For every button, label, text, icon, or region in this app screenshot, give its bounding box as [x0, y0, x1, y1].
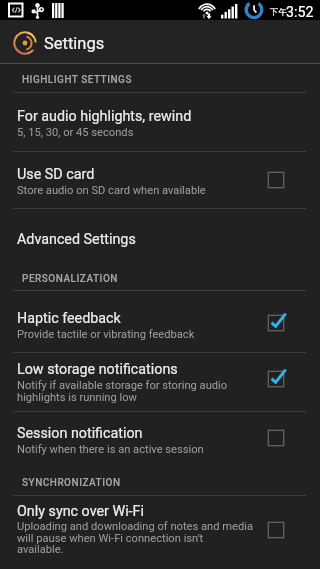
- staticText: Haptic feedback: [17, 310, 121, 327]
- staticText: Low storage notifications: [17, 361, 178, 378]
- staticText: 5, 15, 30, or 45 seconds: [17, 126, 287, 139]
- staticText: Notify if available storage for storing …: [17, 379, 287, 404]
- staticText: 3:52: [286, 4, 314, 21]
- button[interactable]: Unchecked: [263, 517, 289, 543]
- staticText: Notify when there is an active session: [17, 443, 287, 456]
- staticText: Use SD card: [17, 166, 95, 183]
- staticText: PERSONALIZATION: [22, 273, 118, 285]
- staticText: Session notification: [17, 425, 143, 442]
- staticText: SYNCHRONIZATION: [22, 477, 121, 489]
- staticText: Only sync over Wi-Fi: [17, 503, 144, 520]
- button[interactable]: Settings: [0, 20, 320, 63]
- button[interactable]: Unchecked: [263, 167, 289, 193]
- staticText: Advanced Settings: [17, 231, 136, 248]
- staticText: 下午: [270, 7, 287, 18]
- staticText: Uploading and downloading of notes and m…: [17, 520, 287, 556]
- staticText: Provide tactile or vibrating feedback: [17, 328, 287, 341]
- button[interactable]: Checked: [263, 310, 289, 336]
- staticText: HIGHLIGHT SETTINGS: [22, 74, 132, 86]
- staticText: Settings: [44, 34, 105, 53]
- staticText: Store audio on SD card when available: [17, 184, 287, 197]
- button[interactable]: Checked: [263, 366, 289, 392]
- button[interactable]: Unchecked: [263, 425, 289, 451]
- staticText: For audio highlights, rewind: [17, 108, 192, 125]
